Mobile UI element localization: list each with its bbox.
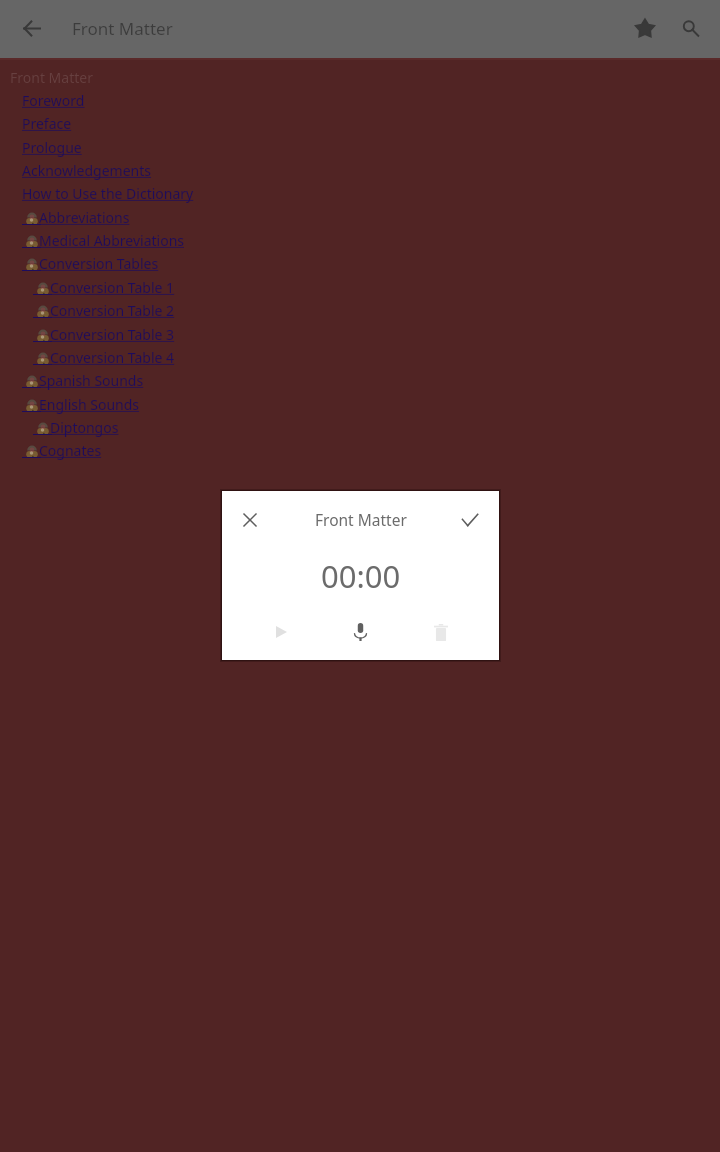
button[interactable]: Bookmark: [616, 0, 673, 57]
staticText: Front Matter: [72, 17, 173, 40]
button[interactable]: Record: [332, 604, 388, 660]
button[interactable]: Conversion Tables: [22, 252, 159, 275]
button[interactable]: Prologue: [22, 136, 82, 159]
staticText: Conversion Table 3: [50, 325, 175, 344]
button[interactable]: Diptongos: [33, 416, 119, 439]
button[interactable]: Medical Abbreviations: [22, 229, 184, 252]
button[interactable]: Conversion Table 2: [33, 299, 175, 322]
staticText: Abbreviations: [39, 208, 130, 227]
staticText: Preface: [22, 114, 72, 133]
staticText: Foreword: [22, 91, 85, 110]
staticText: Front Matter: [10, 68, 93, 87]
staticText: 00:00: [321, 555, 401, 597]
button[interactable]: Abbreviations: [22, 206, 130, 229]
staticText: Conversion Tables: [39, 254, 159, 273]
staticText: Prologue: [22, 138, 82, 157]
staticText: English Sounds: [39, 395, 140, 414]
button[interactable]: Accept: [442, 497, 498, 543]
staticText: Diptongos: [50, 418, 119, 437]
staticText: Conversion Table 1: [50, 278, 175, 297]
button[interactable]: Spanish Sounds: [22, 369, 144, 392]
staticText: Spanish Sounds: [39, 371, 144, 390]
button[interactable]: Acknowledgements: [22, 159, 152, 182]
button[interactable]: Conversion Table 3: [33, 323, 175, 346]
button[interactable]: How to Use the Dictionary: [22, 182, 194, 205]
button[interactable]: Play: [253, 604, 309, 660]
button[interactable]: Delete: [413, 604, 469, 660]
staticText: Conversion Table 2: [50, 301, 175, 320]
staticText: Conversion Table 4: [50, 348, 175, 367]
button[interactable]: Cognates: [22, 439, 102, 462]
staticText: How to Use the Dictionary: [22, 184, 194, 203]
button[interactable]: English Sounds: [22, 393, 140, 416]
button[interactable]: Preface: [22, 112, 72, 135]
button[interactable]: Conversion Table 1: [33, 276, 175, 299]
button[interactable]: Close: [222, 497, 278, 543]
button[interactable]: Search: [662, 0, 719, 57]
staticText: Medical Abbreviations: [39, 231, 184, 250]
button[interactable]: Back: [4, 0, 60, 57]
staticText: Cognates: [39, 441, 102, 460]
staticText: Front Matter: [315, 509, 407, 530]
button[interactable]: Conversion Table 4: [33, 346, 175, 369]
staticText: Acknowledgements: [22, 161, 152, 180]
button[interactable]: Foreword: [22, 89, 85, 112]
